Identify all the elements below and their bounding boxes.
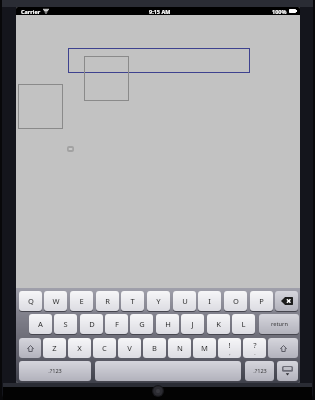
staticText: B: [152, 343, 157, 353]
staticText: W: [52, 296, 60, 306]
button[interactable]: M: [193, 338, 216, 358]
staticText: K: [216, 319, 221, 329]
staticText: .: [254, 350, 256, 357]
button[interactable]: C: [93, 338, 116, 358]
button[interactable]: ?: [243, 338, 266, 358]
button[interactable]: !: [218, 338, 241, 358]
staticText: 100%: [272, 8, 287, 15]
staticText: return: [271, 320, 288, 328]
staticText: ?: [253, 340, 257, 350]
button[interactable]: T: [121, 291, 144, 311]
staticText: D: [89, 319, 95, 329]
button[interactable]: W: [44, 291, 67, 311]
staticText: ,: [229, 350, 231, 357]
staticText: H: [165, 319, 171, 329]
button[interactable]: N: [168, 338, 191, 358]
button[interactable]: V: [118, 338, 141, 358]
button[interactable]: Q: [19, 291, 42, 311]
staticText: C: [102, 343, 107, 353]
staticText: .?123: [253, 367, 267, 375]
button[interactable]: return: [259, 314, 299, 334]
staticText: !: [228, 340, 231, 350]
button[interactable]: [68, 48, 250, 73]
staticText: L: [241, 319, 246, 329]
staticText: Carrier: [21, 8, 41, 15]
staticText: S: [63, 319, 68, 329]
button[interactable]: Backspace: [275, 291, 298, 311]
staticText: M: [201, 343, 208, 353]
staticText: X: [77, 343, 82, 353]
staticText: G: [139, 319, 145, 329]
button[interactable]: B: [143, 338, 166, 358]
button[interactable]: I: [198, 291, 221, 311]
button[interactable]: J: [181, 314, 204, 334]
button[interactable]: Space: [95, 361, 241, 381]
staticText: O: [233, 296, 239, 306]
staticText: Y: [156, 296, 161, 306]
button[interactable]: X: [68, 338, 91, 358]
button[interactable]: Y: [147, 291, 170, 311]
staticText: P: [259, 296, 264, 306]
staticText: U: [182, 296, 188, 306]
staticText: T: [130, 296, 135, 306]
button[interactable]: Shift: [268, 338, 298, 358]
staticText: .?123: [48, 367, 62, 375]
staticText: Z: [52, 343, 57, 353]
button[interactable]: D: [80, 314, 103, 334]
staticText: R: [105, 296, 110, 306]
staticText: F: [115, 319, 119, 329]
button[interactable]: Resize handle: [67, 146, 74, 152]
staticText: Q: [28, 296, 34, 306]
button[interactable]: G: [130, 314, 153, 334]
button[interactable]: E: [70, 291, 93, 311]
staticText: V: [127, 343, 132, 353]
button[interactable]: R: [96, 291, 119, 311]
staticText: I: [208, 296, 211, 306]
button[interactable]: Hide keyboard: [277, 361, 298, 381]
button[interactable]: Z: [43, 338, 66, 358]
button[interactable]: [18, 84, 63, 129]
button[interactable]: K: [207, 314, 230, 334]
button[interactable]: .?123: [19, 361, 91, 381]
button[interactable]: A: [29, 314, 52, 334]
staticText: E: [79, 296, 84, 306]
button[interactable]: F: [105, 314, 128, 334]
button[interactable]: H: [156, 314, 179, 334]
button[interactable]: Home: [152, 385, 164, 397]
staticText: N: [177, 343, 183, 353]
button[interactable]: L: [232, 314, 255, 334]
button[interactable]: S: [54, 314, 77, 334]
button[interactable]: O: [224, 291, 247, 311]
button[interactable]: [84, 56, 129, 101]
staticText: J: [191, 319, 194, 329]
staticText: A: [38, 319, 43, 329]
staticText: 9:15 AM: [149, 8, 171, 15]
button[interactable]: P: [250, 291, 273, 311]
button[interactable]: .?123: [245, 361, 274, 381]
button[interactable]: Shift: [19, 338, 41, 358]
button[interactable]: U: [173, 291, 196, 311]
